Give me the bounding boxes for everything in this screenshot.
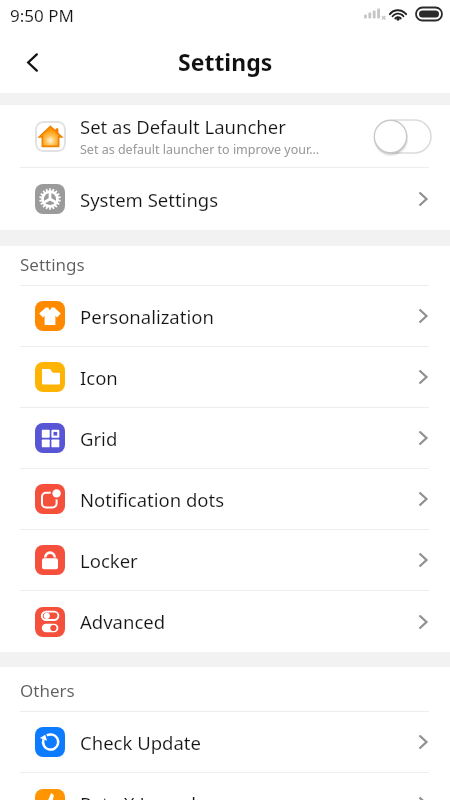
staticText: Check Update	[80, 730, 201, 755]
button[interactable]: Check Update	[0, 712, 450, 772]
button[interactable]	[14, 44, 50, 80]
button[interactable]: Notification dots	[0, 469, 450, 529]
staticText: Locker	[80, 548, 138, 573]
staticText: Advanced	[80, 609, 166, 634]
button[interactable]: Grid	[0, 408, 450, 468]
staticText: Icon	[80, 365, 118, 390]
button[interactable]: Icon	[0, 347, 450, 407]
staticText: Notification dots	[80, 487, 225, 512]
staticText: Set as default launcher to improve your…	[80, 141, 320, 158]
staticText: Set as Default Launcher	[80, 114, 286, 139]
staticText: 9:50 PM	[10, 4, 74, 27]
button[interactable]: Set as Default Launcher	[0, 105, 450, 167]
staticText: Others	[20, 679, 75, 702]
staticText: System Settings	[80, 187, 219, 212]
button[interactable]	[376, 118, 432, 154]
staticText: Rate X Launcher	[80, 791, 221, 800]
staticText: Grid	[80, 426, 118, 451]
button[interactable]: Personalization	[0, 286, 450, 346]
staticText: Personalization	[80, 304, 214, 329]
button[interactable]: Advanced	[0, 591, 450, 652]
staticText: Settings	[178, 46, 273, 77]
button[interactable]: Locker	[0, 530, 450, 590]
staticText: Settings	[20, 253, 85, 276]
button[interactable]: System Settings	[0, 168, 450, 230]
button[interactable]: Rate X Launcher	[0, 773, 450, 800]
